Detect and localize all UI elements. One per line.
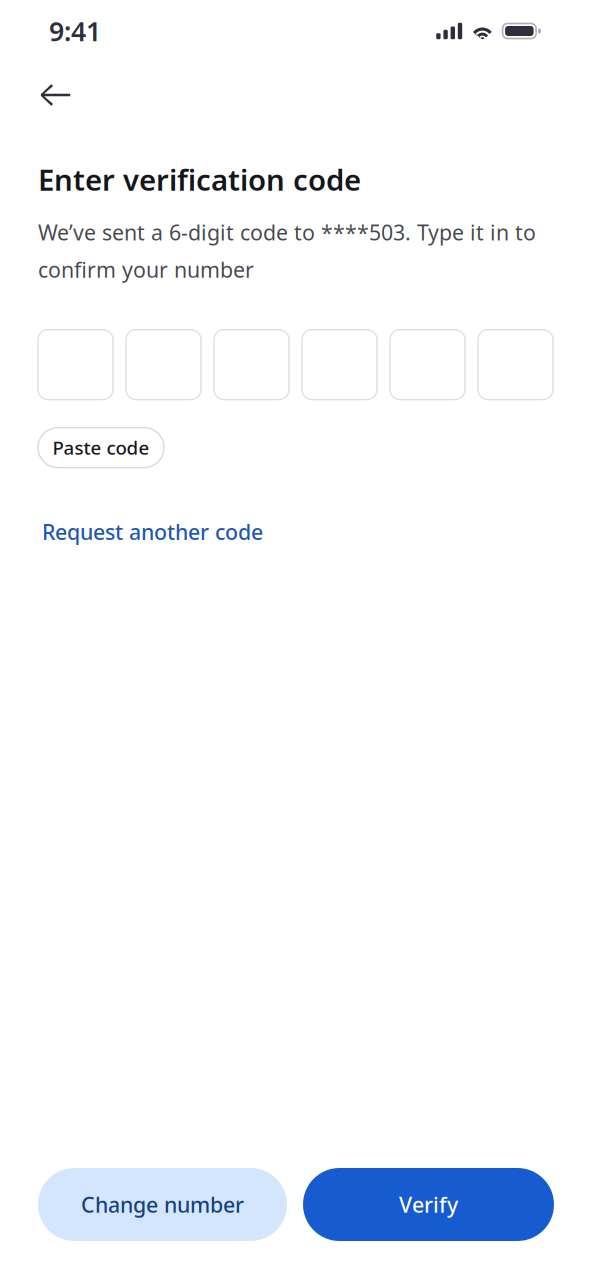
button[interactable]: Paste code — [38, 428, 164, 468]
staticText: Request another code — [42, 518, 263, 546]
button[interactable]: Back — [0, 62, 93, 124]
staticText: Paste code — [52, 435, 149, 460]
button[interactable]: Request another code — [38, 510, 267, 554]
button[interactable]: Change number — [38, 1168, 287, 1241]
staticText: We’ve sent a 6-digit code to ****503. Ty… — [38, 218, 536, 284]
staticText: 9:41 — [49, 13, 101, 49]
button[interactable]: Verify — [303, 1168, 554, 1241]
staticText: Change number — [81, 1190, 244, 1219]
staticText: Enter verification code — [38, 160, 361, 199]
staticText: Verify — [399, 1190, 458, 1219]
